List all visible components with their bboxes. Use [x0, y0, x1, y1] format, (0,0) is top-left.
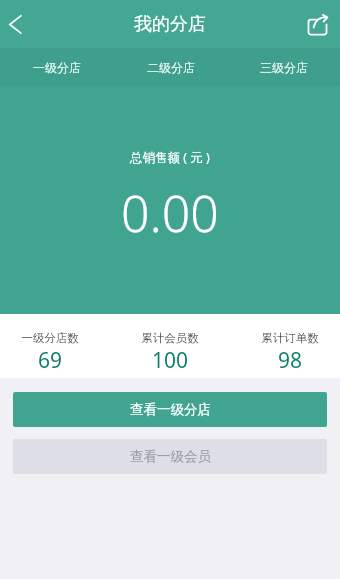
- button[interactable]: 三级分店: [227, 48, 340, 87]
- button[interactable]: 二级分店: [114, 48, 227, 87]
- staticText: 100: [152, 346, 189, 375]
- staticText: 查看一级分店: [130, 401, 211, 418]
- staticText: 累计订单数: [261, 331, 319, 345]
- staticText: 0.00: [121, 179, 219, 247]
- button[interactable]: 查看一级分店: [13, 392, 327, 427]
- staticText: 查看一级会员: [130, 448, 211, 465]
- staticText: 总销售额 ( 元 ): [130, 149, 210, 166]
- button[interactable]: Share: [296, 0, 340, 48]
- button[interactable]: Back: [0, 0, 30, 48]
- staticText: 一级分店数: [21, 331, 79, 345]
- staticText: 98: [278, 346, 303, 375]
- button[interactable]: 查看一级会员: [13, 439, 327, 474]
- button[interactable]: 一级分店: [0, 48, 114, 87]
- staticText: 三级分店: [260, 60, 308, 75]
- staticText: 一级分店: [33, 60, 81, 75]
- staticText: 69: [38, 346, 63, 375]
- staticText: 累计会员数: [141, 331, 199, 345]
- staticText: 二级分店: [147, 60, 195, 75]
- staticText: 我的分店: [134, 13, 206, 36]
